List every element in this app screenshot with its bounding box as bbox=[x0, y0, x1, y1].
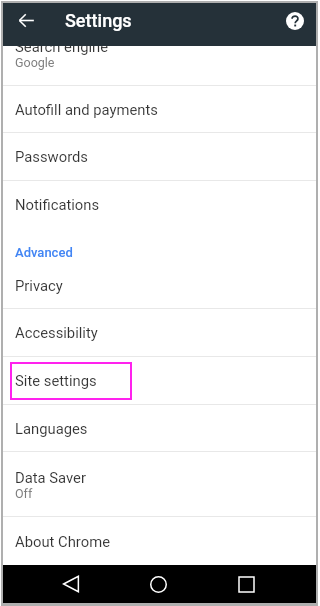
staticText: Accessibility bbox=[15, 324, 98, 341]
button[interactable]: Site settings bbox=[3, 357, 316, 404]
button[interactable]: About Chrome bbox=[3, 517, 316, 565]
button[interactable]: Data Saver bbox=[3, 452, 316, 516]
button[interactable]: Passwords bbox=[3, 133, 316, 180]
button[interactable]: Languages bbox=[3, 405, 316, 451]
button[interactable]: Search engine bbox=[3, 3, 316, 85]
button[interactable]: Help and feedback bbox=[283, 9, 307, 33]
staticText: Google bbox=[15, 55, 55, 70]
staticText: Advanced bbox=[15, 245, 73, 260]
staticText: Autofill and payments bbox=[15, 101, 158, 118]
button[interactable]: Accessibility bbox=[3, 309, 316, 356]
button[interactable]: Home bbox=[139, 565, 178, 603]
staticText: Languages bbox=[15, 420, 88, 437]
button[interactable]: Recent apps bbox=[227, 565, 266, 603]
button[interactable]: Autofill and payments bbox=[3, 86, 316, 132]
button[interactable]: Back bbox=[51, 565, 90, 603]
staticText: Off bbox=[15, 486, 33, 501]
staticText: Data Saver bbox=[15, 469, 86, 486]
staticText: Privacy bbox=[15, 277, 63, 294]
staticText: Site settings bbox=[15, 372, 97, 389]
staticText: Passwords bbox=[15, 148, 88, 165]
staticText: Settings bbox=[65, 10, 132, 31]
staticText: Notifications bbox=[15, 196, 100, 213]
button[interactable]: Notifications bbox=[3, 181, 316, 228]
staticText: Search engine bbox=[15, 38, 109, 55]
button[interactable]: Navigate up bbox=[11, 5, 41, 35]
staticText: About Chrome bbox=[15, 533, 110, 550]
button[interactable]: Privacy bbox=[3, 262, 316, 308]
